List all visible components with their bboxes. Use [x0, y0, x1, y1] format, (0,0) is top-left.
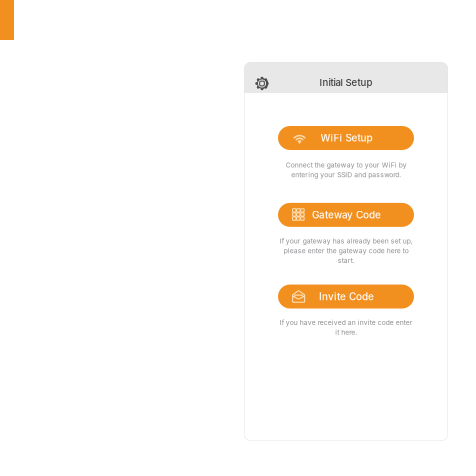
staticText: If your gateway has already been set up,… — [279, 237, 412, 264]
staticText: Connect the gateway to your WiFi by ente… — [285, 161, 406, 179]
button[interactable]: WiFi Setup — [278, 126, 414, 150]
staticText: Initial Setup — [319, 77, 372, 88]
staticText: If you have received an invite code ente… — [279, 318, 412, 336]
button[interactable]: Gateway Code — [278, 203, 414, 227]
staticText: Invite Code — [319, 290, 374, 302]
button[interactable]: Settings — [250, 71, 274, 95]
staticText: Gateway Code — [312, 209, 381, 221]
button[interactable]: Invite Code — [278, 284, 414, 308]
staticText: WiFi Setup — [320, 132, 372, 144]
